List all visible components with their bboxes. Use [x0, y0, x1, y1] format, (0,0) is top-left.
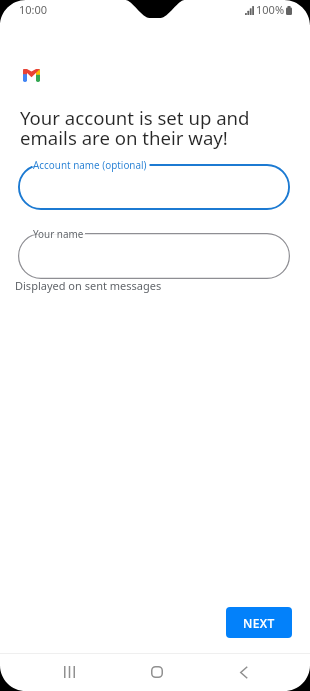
staticText: 10:00 — [19, 2, 48, 17]
staticText: Displayed on sent messages — [15, 278, 162, 293]
staticText: Your account is set up and emails are on… — [20, 105, 250, 150]
button[interactable] — [18, 233, 290, 279]
staticText: Your name — [33, 227, 84, 240]
staticText: Account name (optional) — [33, 158, 147, 171]
button[interactable]: Recent apps — [48, 653, 91, 691]
staticText: NEXT — [243, 615, 275, 631]
button[interactable]: Home — [135, 653, 178, 691]
button[interactable] — [18, 164, 290, 210]
button[interactable]: NEXT — [226, 607, 292, 638]
button[interactable]: Back — [222, 653, 265, 691]
staticText: 100% — [256, 2, 285, 17]
